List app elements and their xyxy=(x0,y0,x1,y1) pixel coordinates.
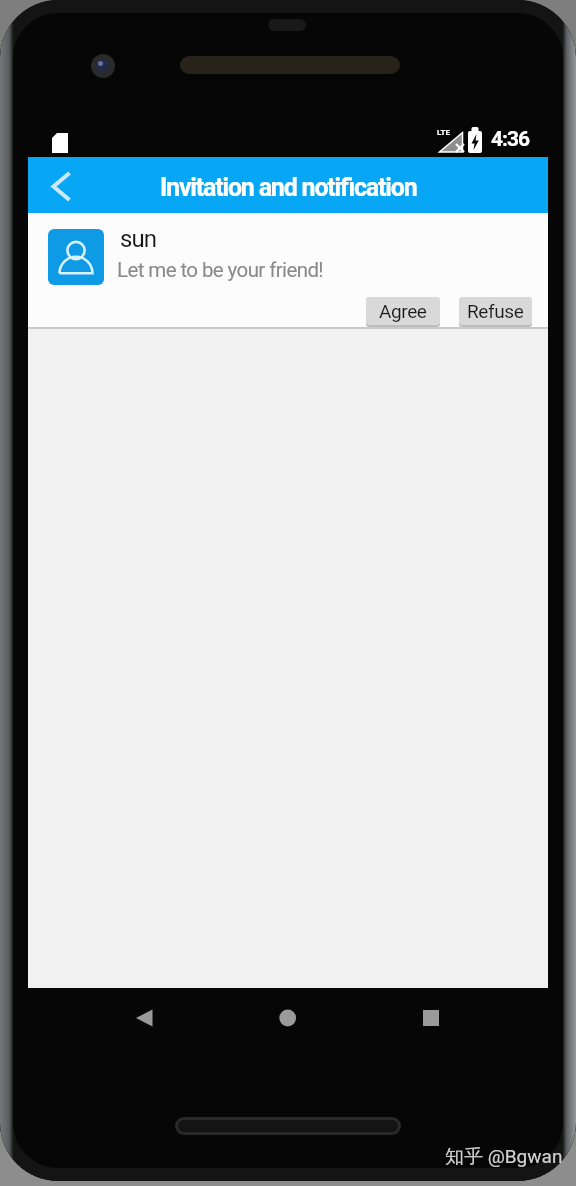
button[interactable]: Agree xyxy=(366,297,440,325)
staticText: LTE xyxy=(437,128,450,137)
staticText: Refuse xyxy=(467,300,524,322)
button[interactable]: Refuse xyxy=(459,297,532,325)
staticText: 4:36 xyxy=(491,127,530,152)
button[interactable] xyxy=(28,157,84,213)
staticText: sun xyxy=(120,225,157,253)
staticText: Invitation and notification xyxy=(160,173,417,202)
staticText: 知乎 @Bgwan xyxy=(445,1145,563,1169)
button[interactable] xyxy=(28,213,548,327)
staticText: Agree xyxy=(379,300,427,322)
staticText: Let me to be your friend! xyxy=(117,258,324,282)
button[interactable] xyxy=(116,990,172,1046)
button[interactable] xyxy=(260,990,316,1046)
button[interactable] xyxy=(403,990,459,1046)
